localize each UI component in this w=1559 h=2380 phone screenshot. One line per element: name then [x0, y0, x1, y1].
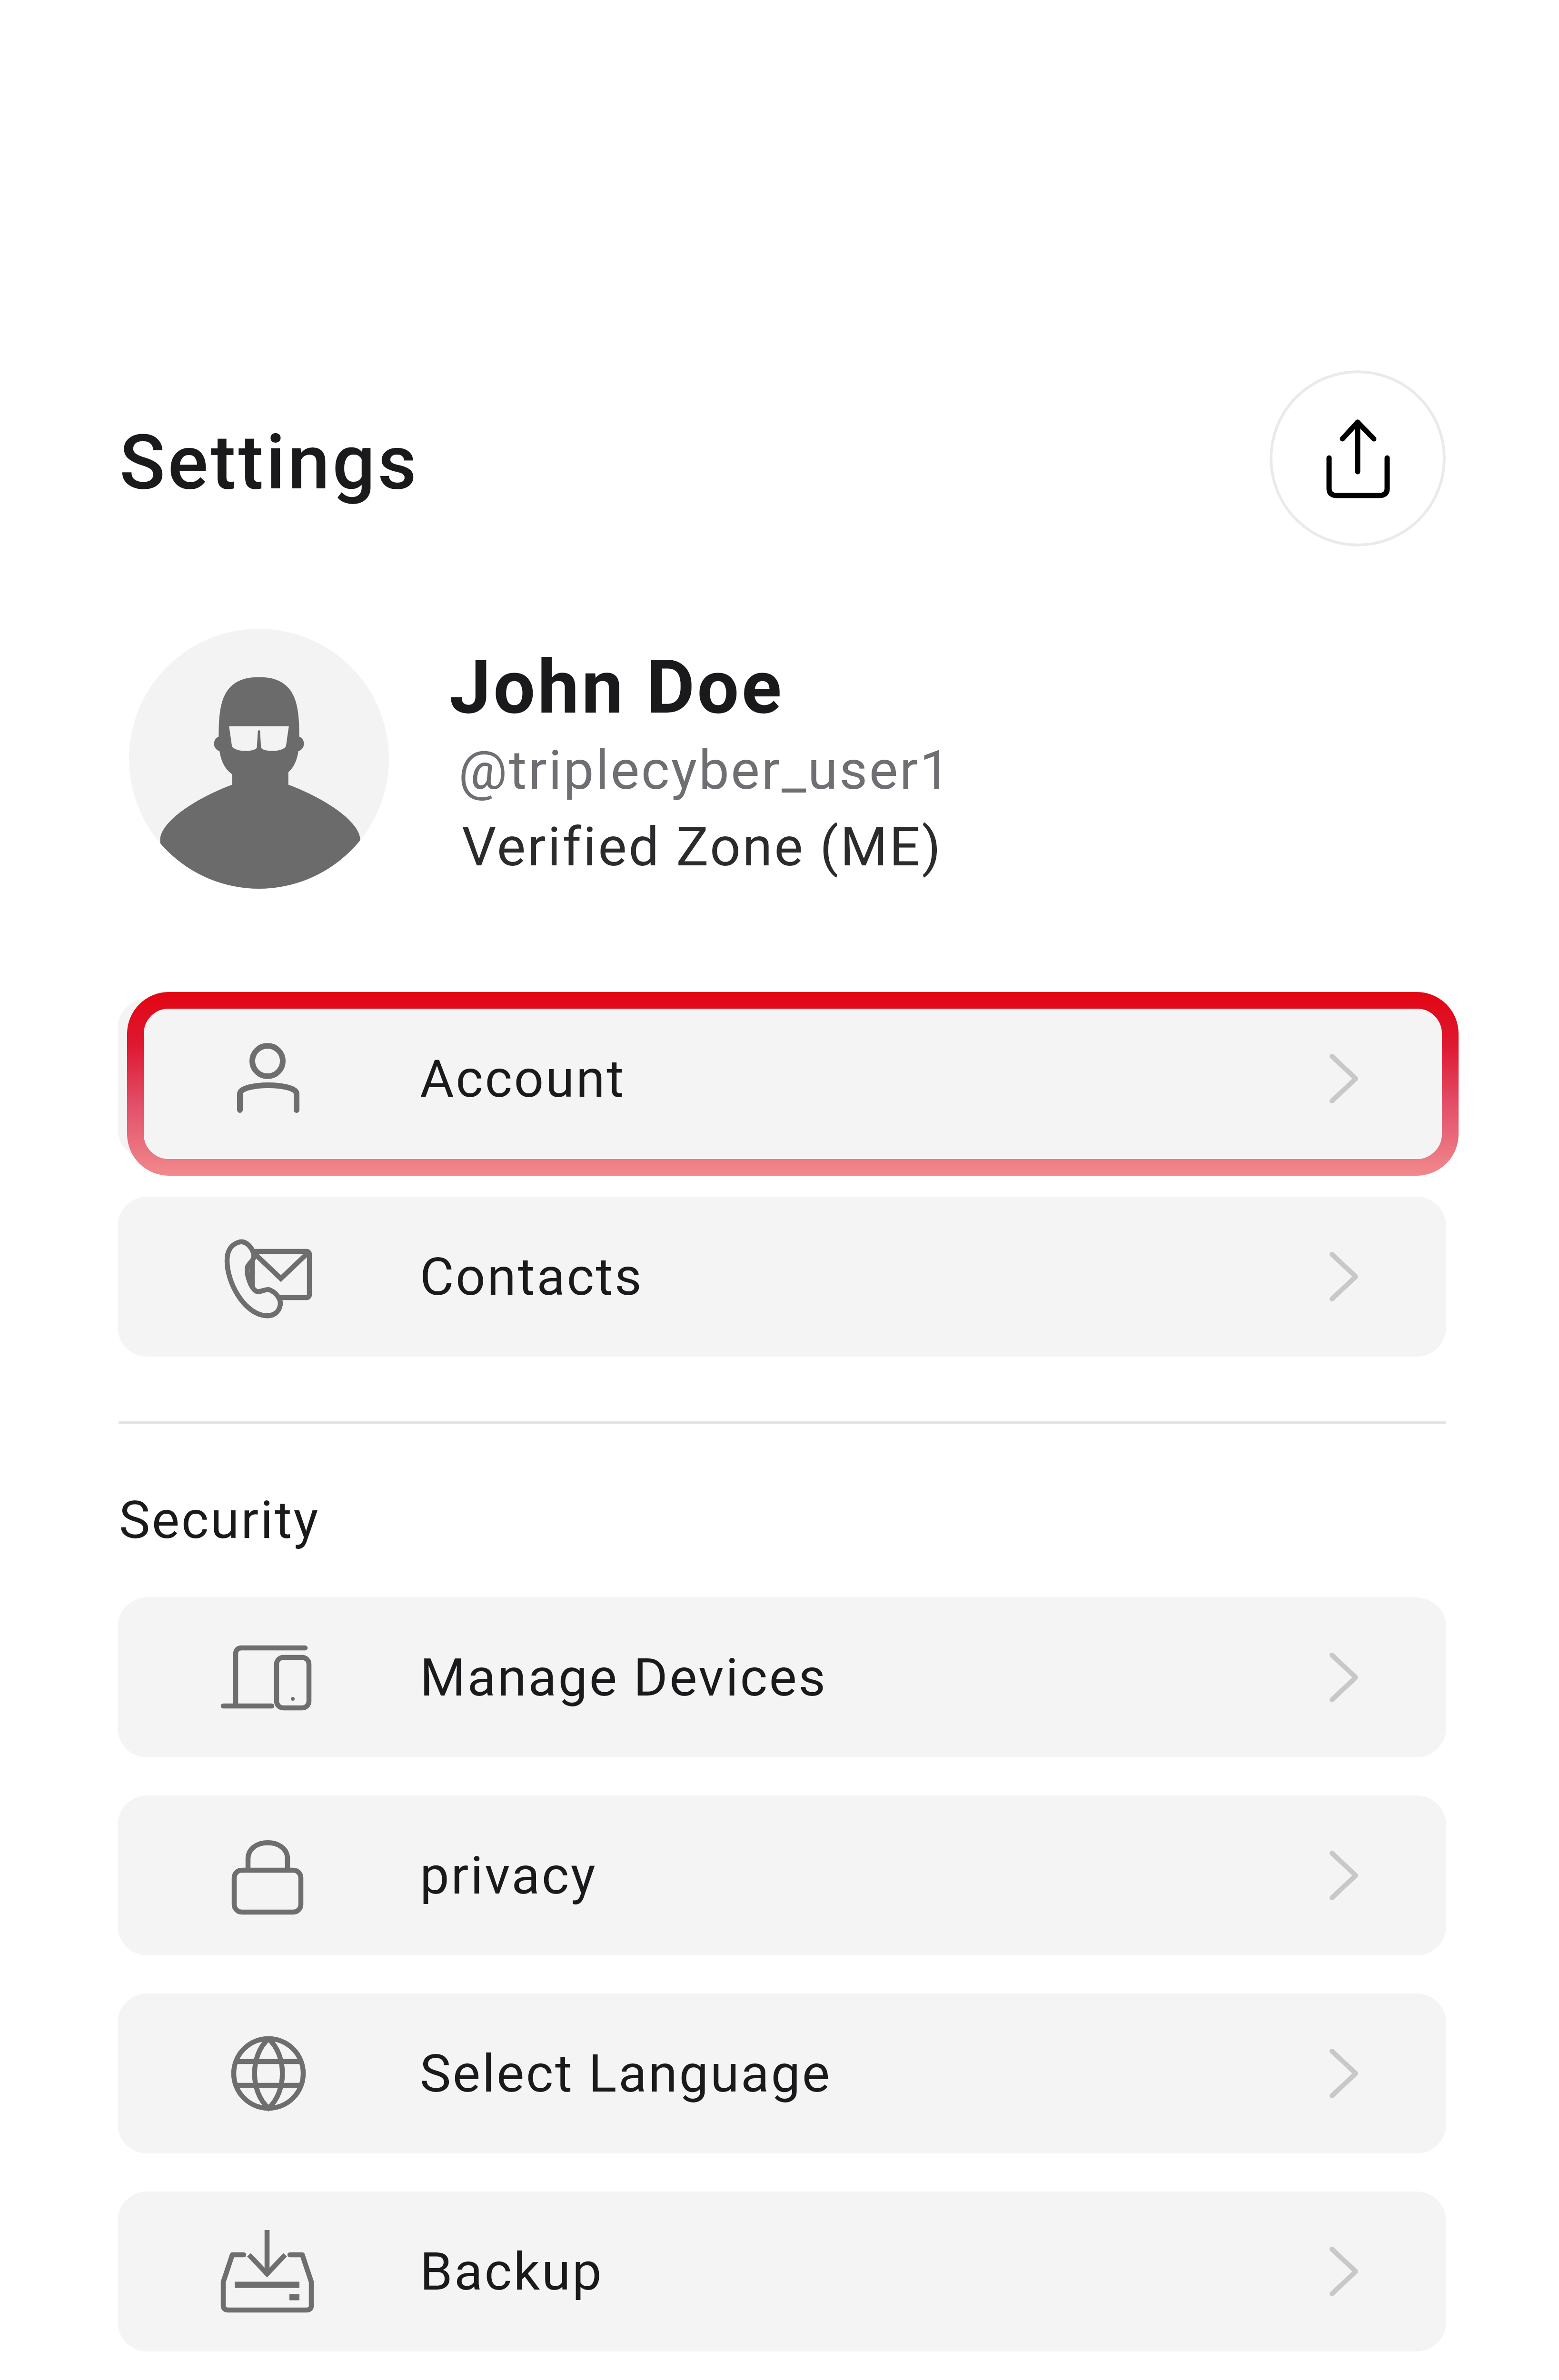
staticText: Backup [420, 2241, 604, 2302]
staticText: Verified Zone (ME) [462, 815, 943, 879]
button[interactable]: Contacts [118, 1197, 1446, 1357]
staticText: privacy [420, 1845, 597, 1906]
button[interactable]: privacy [118, 1795, 1446, 1955]
button[interactable]: Manage Devices [118, 1597, 1446, 1757]
button[interactable]: Account [118, 999, 1446, 1159]
button[interactable]: Select Language [118, 1993, 1446, 2153]
button[interactable]: Share [1270, 370, 1446, 546]
button[interactable]: Backup [118, 2192, 1446, 2351]
staticText: Settings [119, 418, 419, 506]
staticText: John Doe [449, 644, 784, 731]
staticText: Manage Devices [420, 1647, 827, 1708]
staticText: @triplecyber_user1 [458, 738, 952, 802]
staticText: Contacts [420, 1246, 644, 1308]
staticText: Security [119, 1489, 320, 1551]
staticText: Select Language [420, 2043, 832, 2104]
staticText: Account [420, 1048, 626, 1110]
